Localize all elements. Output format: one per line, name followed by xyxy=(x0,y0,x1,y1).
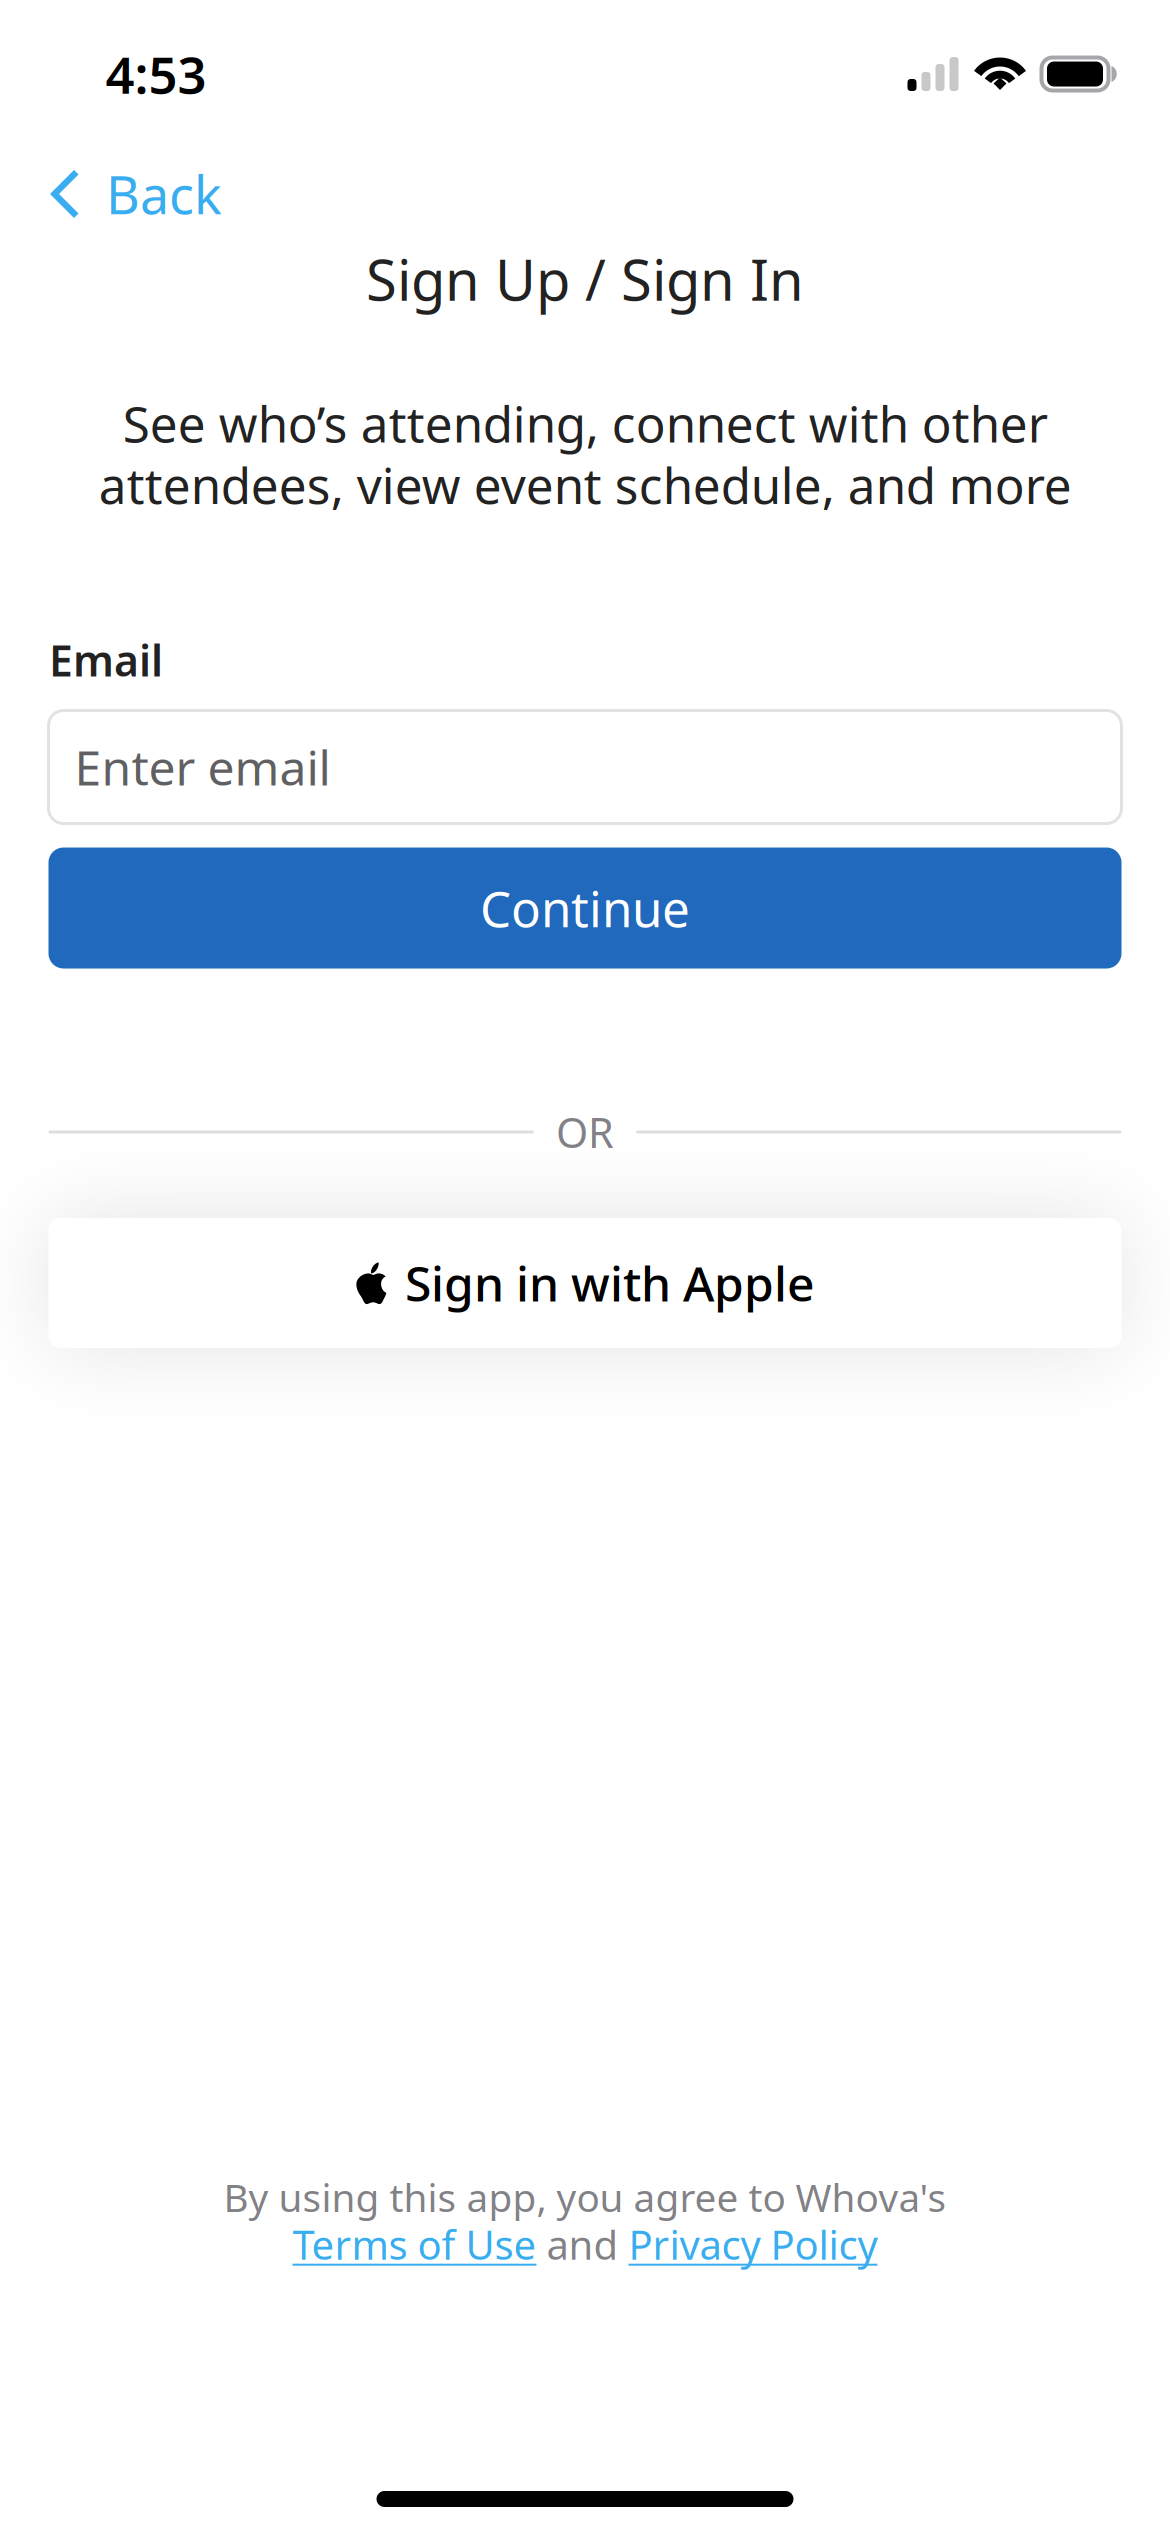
staticText: Continue xyxy=(480,875,690,941)
staticText: OR xyxy=(556,1105,614,1159)
staticText: Sign Up / Sign In xyxy=(366,242,804,316)
staticText: 4:53 xyxy=(105,40,206,108)
staticText: Privacy Policy xyxy=(628,2218,877,2271)
button[interactable]: Sign in with Apple xyxy=(48,1218,1121,1348)
staticText: Terms of Use xyxy=(292,2218,536,2271)
button[interactable]: Enter email xyxy=(48,710,1121,823)
button[interactable]: Back xyxy=(0,146,377,242)
button[interactable]: Terms of Use xyxy=(292,2218,536,2271)
button[interactable]: Continue xyxy=(48,847,1121,968)
staticText: Enter email xyxy=(74,735,330,799)
button[interactable]: Privacy Policy xyxy=(628,2218,877,2271)
staticText: Back xyxy=(106,159,222,229)
staticText: and xyxy=(536,2218,628,2271)
staticText: By using this app, you agree to Whova's xyxy=(223,2171,946,2223)
staticText: Email xyxy=(49,632,163,688)
staticText: See who’s attending, connect with other … xyxy=(98,390,1071,517)
staticText: Sign in with Apple xyxy=(405,1251,815,1315)
